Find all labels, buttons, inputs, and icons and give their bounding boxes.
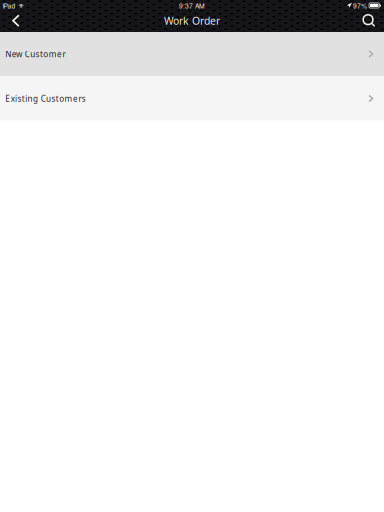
staticText: 9:37 AM [179, 1, 205, 10]
staticText: iPad [3, 1, 16, 10]
button[interactable]: New Customer [0, 32, 384, 76]
staticText: 97% [353, 1, 367, 10]
button[interactable]: Search [355, 11, 384, 32]
button[interactable]: Back [0, 11, 31, 32]
staticText: New Customer [5, 48, 65, 60]
staticText: Existing Customers [5, 93, 86, 104]
staticText: Work Order [164, 14, 220, 28]
button[interactable]: Existing Customers [0, 76, 384, 120]
